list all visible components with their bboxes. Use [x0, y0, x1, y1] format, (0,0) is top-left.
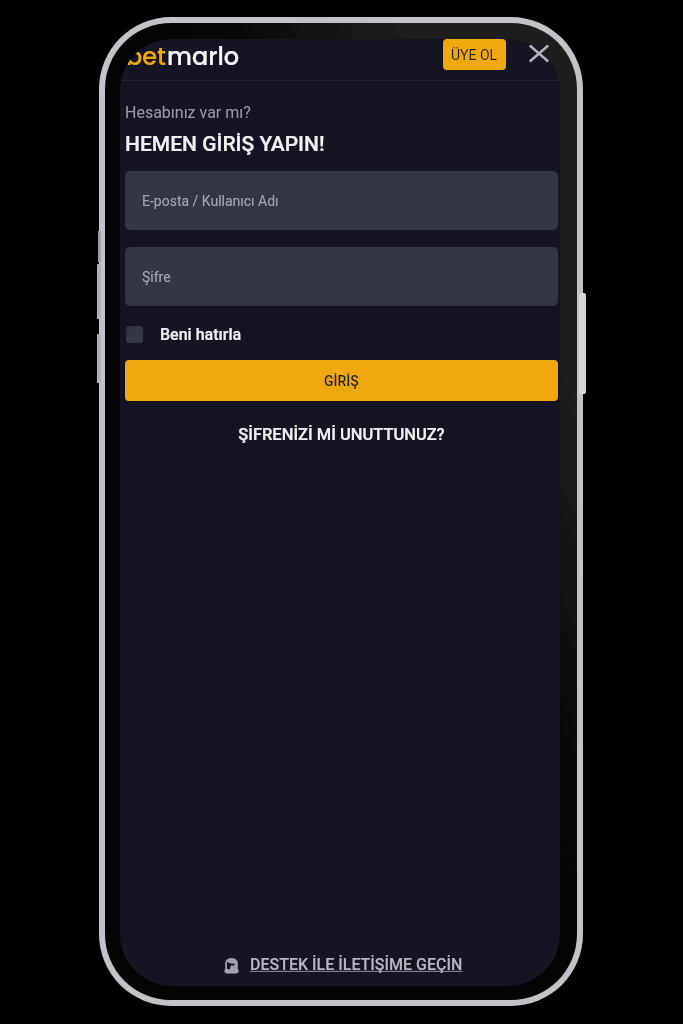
staticText: ÜYE OL — [451, 47, 498, 63]
staticText: Beni hatırla — [160, 325, 242, 344]
staticText: ŞİFRENİZİ Mİ UNUTTUNUZ? — [238, 425, 445, 444]
button[interactable]: E-posta / Kullanıcı Adı — [125, 171, 558, 230]
button[interactable]: Close — [527, 41, 551, 66]
staticText: DESTEK İLE İLETİŞİME GEÇİN — [250, 955, 463, 974]
staticText: GİRİŞ — [324, 373, 359, 389]
button[interactable]: DESTEK İLE İLETİŞİME GEÇİN — [224, 955, 463, 974]
staticText: bet — [126, 40, 167, 74]
button[interactable]: Beni hatırla — [125, 325, 242, 344]
staticText: marlo — [167, 40, 240, 74]
button[interactable]: Şifre — [125, 247, 558, 306]
button[interactable]: ŞİFRENİZİ Mİ UNUTTUNUZ? — [125, 425, 558, 444]
staticText: E-posta / Kullanıcı Adı — [142, 193, 279, 209]
staticText: Şifre — [142, 269, 171, 285]
button[interactable]: bet — [126, 40, 240, 74]
button[interactable]: GİRİŞ — [125, 360, 558, 401]
staticText: HEMEN GİRİŞ YAPIN! — [125, 132, 325, 157]
button[interactable]: ÜYE OL — [443, 39, 506, 70]
staticText: Hesabınız var mı? — [125, 103, 251, 122]
